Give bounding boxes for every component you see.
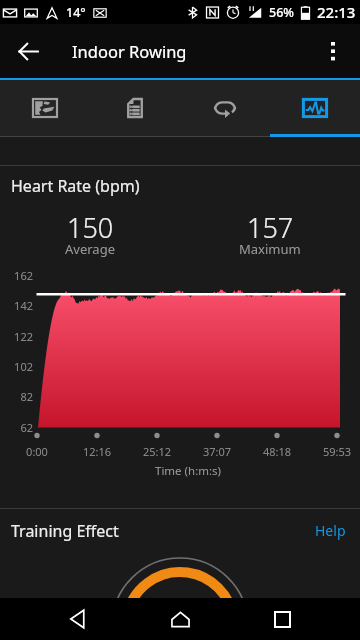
staticText: 122	[0, 329, 33, 344]
button[interactable]: Heart rate	[270, 80, 360, 137]
staticText: 157	[247, 209, 294, 246]
button[interactable]: Navigate up	[0, 24, 56, 78]
button[interactable]: Back	[54, 598, 102, 640]
staticText: Training Effect	[11, 520, 119, 542]
staticText: Indoor Rowing	[72, 40, 187, 62]
staticText: 82	[0, 389, 33, 404]
button[interactable]: Map	[0, 80, 90, 137]
staticText: 150	[67, 209, 114, 246]
staticText: 14°	[66, 4, 86, 21]
staticText: 59:53	[307, 444, 360, 459]
staticText: 12:16	[67, 444, 127, 459]
staticText: 142	[0, 298, 33, 313]
staticText: Help	[315, 521, 346, 540]
button[interactable]: Recent apps	[258, 598, 306, 640]
staticText: 56%	[269, 4, 294, 21]
staticText: 162	[0, 268, 33, 283]
staticText: 37:07	[187, 444, 247, 459]
staticText: Heart Rate (bpm)	[11, 175, 140, 197]
button[interactable]: Details	[90, 80, 180, 137]
staticText: 22:13	[317, 2, 356, 22]
button[interactable]: Help	[301, 518, 360, 543]
button[interactable]: Home	[156, 598, 204, 640]
button[interactable]: More options	[306, 24, 360, 78]
button[interactable]: Laps	[180, 80, 270, 137]
staticText: Average	[65, 240, 115, 258]
staticText: 62	[0, 420, 33, 435]
staticText: 0:00	[7, 444, 67, 459]
staticText: Time (h:m:s)	[8, 463, 360, 479]
staticText: Maximum	[239, 240, 301, 258]
staticText: 102	[0, 359, 33, 374]
staticText: 48:18	[247, 444, 307, 459]
staticText: 25:12	[127, 444, 187, 459]
